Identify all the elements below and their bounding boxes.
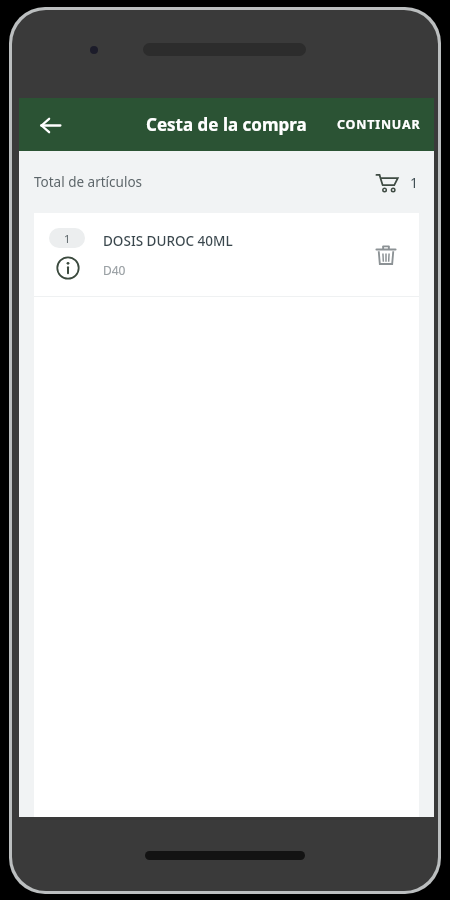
button[interactable]: Back [29, 104, 71, 146]
button[interactable]: CONTINUAR [324, 105, 434, 144]
staticText: CONTINUAR [337, 116, 421, 133]
staticText: 1 [64, 231, 71, 246]
staticText: D40 [103, 262, 126, 278]
staticText: DOSIS DUROC 40ML [103, 232, 233, 250]
button[interactable]: Information [54, 254, 81, 281]
button[interactable]: 1 [34, 213, 419, 296]
staticText: Total de artículos [34, 173, 143, 191]
staticText: 1 [410, 173, 419, 192]
button[interactable]: Delete [365, 234, 407, 276]
staticText: Cesta de la compra [146, 113, 307, 136]
other: Cart [375, 170, 399, 194]
